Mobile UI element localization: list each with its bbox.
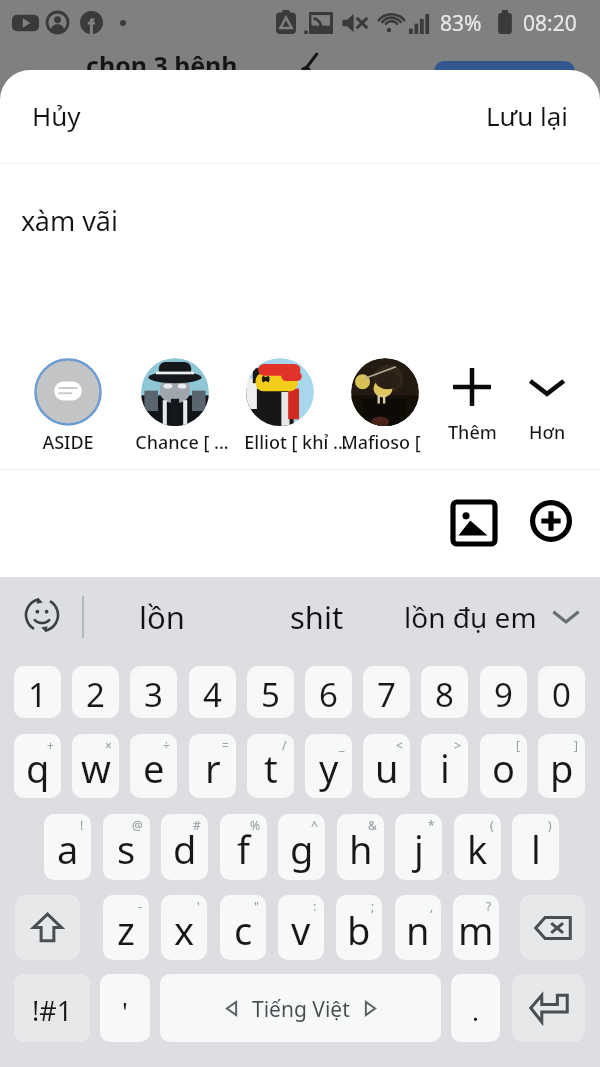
staticText: chon 3 bệnh	[86, 48, 238, 82]
staticText: Chance [ ...	[135, 430, 203, 455]
staticText: '	[122, 993, 128, 1028]
staticText: o	[492, 742, 515, 794]
staticText: 7	[377, 672, 396, 717]
button[interactable]: g	[278, 814, 325, 880]
staticText: ASIDE	[42, 430, 94, 455]
button[interactable]: e	[130, 734, 177, 798]
button[interactable]: lồn	[87, 577, 237, 657]
staticText: g	[290, 823, 314, 875]
staticText: shit	[290, 596, 344, 638]
staticText: c	[234, 904, 253, 956]
button[interactable]: Chance [ ...	[141, 350, 209, 450]
button[interactable]: d	[161, 814, 208, 880]
button[interactable]: h	[337, 814, 384, 880]
button[interactable]: Emoji	[14, 587, 70, 643]
staticText: ,	[430, 898, 434, 914]
button[interactable]: Shift	[15, 895, 80, 960]
staticText: ;	[371, 898, 375, 914]
staticText: ?	[486, 898, 492, 914]
staticText: d	[173, 823, 197, 875]
staticText: x	[174, 904, 195, 956]
staticText: lồn	[139, 596, 185, 638]
button[interactable]: 5	[247, 666, 294, 718]
button[interactable]: u	[363, 734, 410, 798]
button[interactable]: shit	[255, 577, 379, 657]
staticText: ÷	[163, 737, 170, 753]
button[interactable]: Backspace	[520, 895, 585, 960]
button[interactable]: n	[395, 895, 441, 960]
button[interactable]: i	[421, 734, 468, 798]
staticText: )	[548, 817, 552, 833]
button[interactable]: 8	[421, 666, 468, 718]
staticText: m	[458, 904, 494, 956]
staticText: Tiếng Việt	[252, 995, 350, 1024]
button[interactable]: lồn đụ em	[400, 577, 540, 657]
staticText: Lưu lại	[486, 98, 568, 133]
button[interactable]: m	[453, 895, 499, 960]
button[interactable]: f	[220, 814, 267, 880]
staticText: 9	[494, 672, 513, 717]
button[interactable]: r	[189, 734, 236, 798]
button[interactable]: k	[454, 814, 501, 880]
button[interactable]: j	[395, 814, 442, 880]
button[interactable]: o	[480, 734, 527, 798]
button[interactable]: 4	[189, 666, 236, 718]
button[interactable]: y	[305, 734, 352, 798]
button[interactable]: Thêm	[440, 350, 504, 450]
button[interactable]: 9	[480, 666, 527, 718]
button[interactable]: b	[336, 895, 382, 960]
button[interactable]: 1	[14, 666, 61, 718]
button[interactable]: t	[247, 734, 294, 798]
staticText: 3	[144, 672, 163, 717]
staticText: r	[205, 742, 221, 794]
button[interactable]: p	[538, 734, 585, 798]
button[interactable]: 2	[72, 666, 119, 718]
button[interactable]: Tiếng Việt	[160, 974, 441, 1042]
button[interactable]: .	[451, 974, 500, 1042]
staticText: xàm vãi	[21, 202, 118, 239]
staticText: p	[550, 742, 574, 794]
button[interactable]: c	[220, 895, 266, 960]
staticText: .	[472, 993, 479, 1028]
button[interactable]: Mafioso [	[351, 350, 419, 450]
staticText: lồn đụ em	[404, 598, 537, 636]
button[interactable]: l	[512, 814, 559, 880]
button[interactable]: ASIDE	[34, 350, 102, 450]
button[interactable]: Lưu lại	[462, 84, 592, 147]
button[interactable]: 3	[130, 666, 177, 718]
staticText: _	[339, 737, 345, 753]
staticText: *	[428, 817, 435, 833]
button[interactable]: Hủy	[8, 84, 105, 147]
button[interactable]: Expand suggestions	[543, 593, 588, 638]
staticText: v	[291, 904, 311, 956]
staticText: i	[440, 742, 450, 794]
button[interactable]: Enter	[512, 974, 585, 1042]
staticText: Thêm	[448, 420, 497, 445]
button[interactable]: s	[103, 814, 150, 880]
button[interactable]: Attach image	[443, 492, 505, 554]
button[interactable]: 0	[538, 666, 585, 718]
staticText: (	[490, 817, 494, 833]
button[interactable]: 6	[305, 666, 352, 718]
staticText: a	[57, 823, 79, 875]
staticText: &	[368, 817, 377, 833]
button[interactable]: q	[14, 734, 61, 798]
staticText: @	[132, 817, 143, 833]
staticText: y	[319, 742, 339, 794]
button[interactable]: !#1	[14, 974, 90, 1042]
staticText: Mafioso [	[341, 430, 409, 455]
button[interactable]: x	[161, 895, 207, 960]
button[interactable]: 7	[363, 666, 410, 718]
staticText: >	[454, 737, 461, 753]
button[interactable]: w	[72, 734, 119, 798]
button[interactable]: Elliot [ khỉ ...	[246, 350, 314, 450]
button[interactable]: z	[103, 895, 149, 960]
staticText: #	[193, 817, 201, 833]
button[interactable]: a	[44, 814, 91, 880]
button[interactable]: '	[100, 974, 150, 1042]
staticText: %	[250, 817, 260, 833]
button[interactable]: Add	[521, 491, 581, 551]
button[interactable]: Hơn	[515, 350, 579, 450]
button[interactable]: v	[278, 895, 324, 960]
staticText: z	[117, 904, 135, 956]
